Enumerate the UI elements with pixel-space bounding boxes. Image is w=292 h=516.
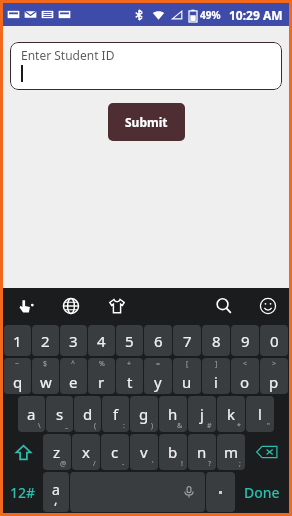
staticText: p bbox=[269, 372, 279, 392]
staticText: 4 bbox=[97, 331, 106, 351]
button[interactable]: 2 bbox=[32, 325, 59, 356]
button[interactable]: 8 bbox=[202, 325, 230, 356]
staticText: = bbox=[156, 359, 161, 369]
staticText: ( bbox=[94, 421, 97, 431]
staticText: e bbox=[69, 372, 78, 392]
staticText: 3 bbox=[69, 331, 78, 351]
button[interactable]: 12# bbox=[4, 471, 42, 513]
button[interactable]: = bbox=[144, 358, 172, 394]
button[interactable]: a bbox=[43, 472, 69, 512]
staticText: v bbox=[140, 442, 148, 462]
button[interactable]: 4 bbox=[88, 325, 115, 356]
staticText: + bbox=[127, 359, 132, 369]
button[interactable]: l bbox=[246, 396, 274, 432]
button[interactable]: z bbox=[43, 434, 71, 470]
staticText: d bbox=[83, 404, 93, 424]
button[interactable]: v bbox=[130, 434, 158, 470]
button[interactable]: 1 bbox=[4, 325, 31, 356]
staticText: ; bbox=[239, 459, 241, 469]
button[interactable]: c bbox=[101, 434, 129, 470]
staticText: ] bbox=[215, 359, 218, 369]
staticText: k bbox=[227, 404, 236, 424]
staticText: 1 bbox=[13, 331, 22, 351]
button[interactable]: g bbox=[130, 396, 158, 432]
button[interactable]: 3 bbox=[60, 325, 87, 356]
button[interactable]: 0 bbox=[260, 325, 288, 356]
button[interactable]: $ bbox=[32, 358, 59, 394]
button[interactable]: ^ bbox=[60, 358, 87, 394]
staticText: ' bbox=[152, 459, 154, 469]
staticText: ) bbox=[151, 421, 154, 431]
button[interactable]: Submit bbox=[108, 103, 185, 141]
button[interactable]: 5 bbox=[116, 325, 143, 356]
button[interactable]: Keyboard theme bbox=[94, 288, 140, 324]
staticText: a bbox=[27, 404, 36, 424]
staticText: a bbox=[52, 480, 60, 499]
button[interactable]: Change language bbox=[48, 288, 94, 324]
staticText: " bbox=[267, 421, 270, 431]
staticText: [ bbox=[186, 359, 189, 369]
staticText: 0 bbox=[270, 331, 279, 351]
staticText: w bbox=[40, 372, 52, 392]
staticText: < bbox=[243, 359, 248, 369]
button[interactable]: Enter Student ID bbox=[10, 42, 282, 90]
button[interactable]: f bbox=[102, 396, 129, 432]
staticText: 10:29 AM bbox=[229, 7, 283, 23]
staticText: j bbox=[200, 404, 204, 424]
button[interactable]: m bbox=[217, 434, 245, 470]
button[interactable]: + bbox=[116, 358, 143, 394]
staticText: 49% bbox=[200, 8, 221, 22]
staticText: % bbox=[99, 359, 105, 369]
staticText: 8 bbox=[212, 331, 221, 351]
button[interactable]: 9 bbox=[231, 325, 259, 356]
staticText: y bbox=[154, 372, 162, 392]
staticText: s bbox=[56, 404, 64, 424]
staticText: f bbox=[113, 404, 119, 424]
staticText: 2 bbox=[41, 331, 50, 351]
button[interactable]: % bbox=[88, 358, 115, 394]
button[interactable]: d bbox=[74, 396, 101, 432]
staticText: ~ bbox=[15, 359, 20, 369]
staticText: & bbox=[177, 421, 183, 431]
button[interactable]: a bbox=[18, 396, 45, 432]
button[interactable]: Backspace bbox=[246, 434, 288, 470]
button[interactable]: Shift bbox=[4, 434, 42, 470]
button[interactable]: [ bbox=[173, 358, 201, 394]
staticText: / bbox=[93, 459, 96, 469]
button[interactable]: b bbox=[159, 434, 187, 470]
staticText: 6 bbox=[154, 331, 163, 351]
staticText: l bbox=[258, 404, 262, 424]
button[interactable]: 7 bbox=[173, 325, 201, 356]
button[interactable]: > bbox=[260, 358, 288, 394]
button[interactable]: ] bbox=[202, 358, 230, 394]
button[interactable] bbox=[206, 472, 235, 512]
button[interactable]: Keyboard input options bbox=[3, 288, 48, 324]
staticText: Enter Student ID bbox=[21, 47, 115, 63]
staticText: z bbox=[53, 442, 61, 462]
button[interactable]: 6 bbox=[144, 325, 172, 356]
button[interactable]: j bbox=[188, 396, 216, 432]
button[interactable]: Emoji bbox=[247, 288, 289, 324]
staticText: , bbox=[54, 490, 58, 508]
button[interactable]: s bbox=[46, 396, 73, 432]
button[interactable]: ~ bbox=[4, 358, 31, 394]
button[interactable]: Done bbox=[236, 471, 288, 513]
button[interactable]: n bbox=[188, 434, 216, 470]
button[interactable]: Search bbox=[201, 288, 247, 324]
staticText: o bbox=[240, 372, 250, 392]
staticText: 12# bbox=[10, 483, 36, 502]
staticText: 9 bbox=[241, 331, 250, 351]
staticText: m bbox=[224, 442, 239, 462]
staticText: # bbox=[207, 421, 212, 431]
staticText: q bbox=[13, 372, 23, 392]
staticText: r bbox=[98, 372, 105, 392]
button[interactable]: x bbox=[72, 434, 100, 470]
button[interactable] bbox=[70, 472, 205, 512]
staticText: t bbox=[127, 372, 133, 392]
button[interactable]: h bbox=[159, 396, 187, 432]
button[interactable]: k bbox=[217, 396, 245, 432]
staticText: ? bbox=[208, 459, 212, 469]
staticText: g bbox=[139, 404, 149, 424]
staticText: Submit bbox=[125, 114, 168, 130]
button[interactable]: < bbox=[231, 358, 259, 394]
